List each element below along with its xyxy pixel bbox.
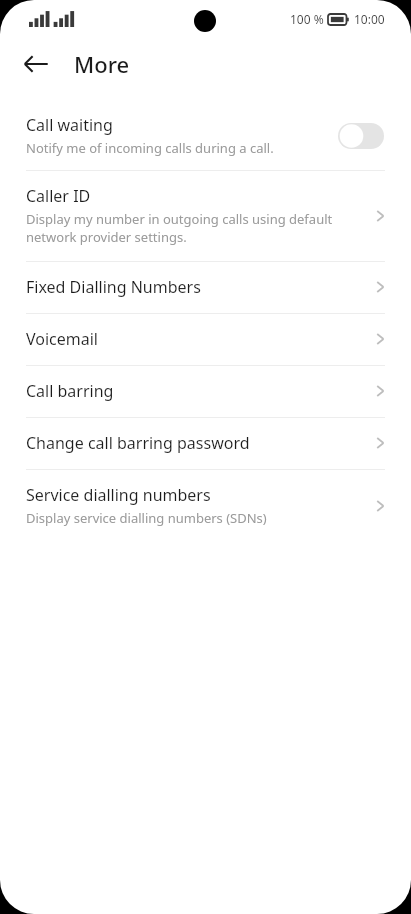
button[interactable]: Fixed Dialling Numbers [0, 262, 411, 313]
staticText: 100 % [290, 11, 324, 27]
staticText: Voicemail [26, 328, 98, 350]
button[interactable]: Caller ID [0, 171, 411, 261]
staticText: Display my number in outgoing calls usin… [26, 210, 360, 246]
button[interactable]: Change call barring password [0, 418, 411, 469]
staticText: Call barring [26, 380, 114, 402]
staticText: Fixed Dialling Numbers [26, 276, 201, 298]
staticText: More [74, 49, 130, 79]
staticText: Call waiting [26, 114, 113, 136]
staticText: Caller ID [26, 185, 91, 207]
staticText: Change call barring password [26, 432, 250, 454]
button[interactable]: Voicemail [0, 314, 411, 365]
staticText: Display service dialling numbers (SDNs) [26, 509, 267, 527]
button[interactable]: Call barring [0, 366, 411, 417]
button[interactable]: Service dialling numbers [0, 470, 411, 542]
staticText: Notify me of incoming calls during a cal… [26, 139, 274, 157]
button[interactable]: Call waiting toggle [335, 121, 387, 151]
staticText: Service dialling numbers [26, 484, 211, 506]
button[interactable]: Back [14, 42, 58, 86]
staticText: 10:00 [354, 11, 385, 27]
button[interactable]: Call waiting [0, 102, 411, 170]
